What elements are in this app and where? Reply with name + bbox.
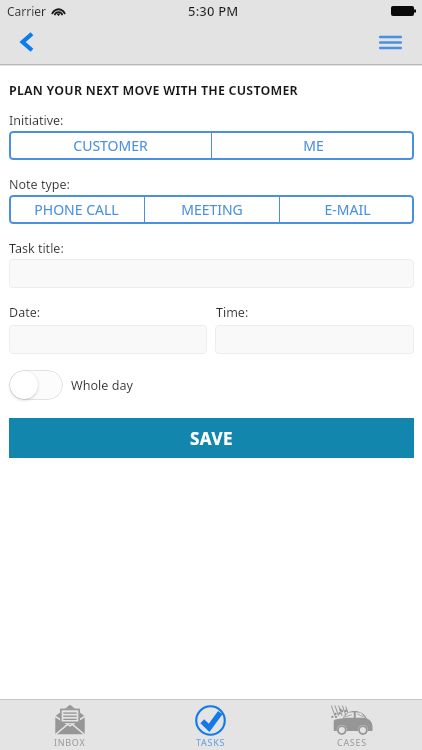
staticText: ME [303, 136, 324, 155]
staticText: CASES [337, 736, 367, 748]
button[interactable]: CASES [281, 700, 422, 750]
staticText: SAVE [190, 427, 234, 450]
button[interactable] [9, 325, 207, 354]
button[interactable]: CUSTOMER [9, 131, 211, 160]
button[interactable] [215, 325, 414, 354]
button[interactable] [9, 370, 63, 400]
button[interactable]: SAVE [9, 418, 414, 458]
button[interactable]: PHONE CALL [9, 195, 144, 224]
staticText: Date: [9, 304, 41, 321]
staticText: Time: [216, 304, 249, 321]
staticText: CUSTOMER [73, 136, 148, 155]
button[interactable]: Menu [379, 36, 402, 49]
button[interactable] [9, 259, 414, 288]
button[interactable]: INBOX [0, 700, 140, 750]
button[interactable]: TASKS [140, 700, 281, 750]
staticText: Task title: [9, 240, 64, 257]
staticText: TASKS [196, 736, 226, 748]
staticText: 5:30 PM [188, 2, 239, 20]
staticText: PHONE CALL [34, 200, 119, 219]
button[interactable]: E-MAIL [280, 195, 414, 224]
button[interactable]: MEETING [145, 195, 279, 224]
staticText: MEETING [181, 200, 243, 219]
button[interactable]: ME [212, 131, 414, 160]
staticText: PLAN YOUR NEXT MOVE WITH THE CUSTOMER [9, 82, 298, 99]
staticText: Note type: [9, 176, 70, 193]
staticText: Carrier [7, 3, 47, 19]
staticText: INBOX [54, 736, 86, 748]
staticText: E-MAIL [324, 200, 371, 219]
staticText: Whole day [71, 377, 133, 394]
button[interactable]: Back [14, 29, 40, 55]
staticText: Initiative: [9, 112, 64, 129]
